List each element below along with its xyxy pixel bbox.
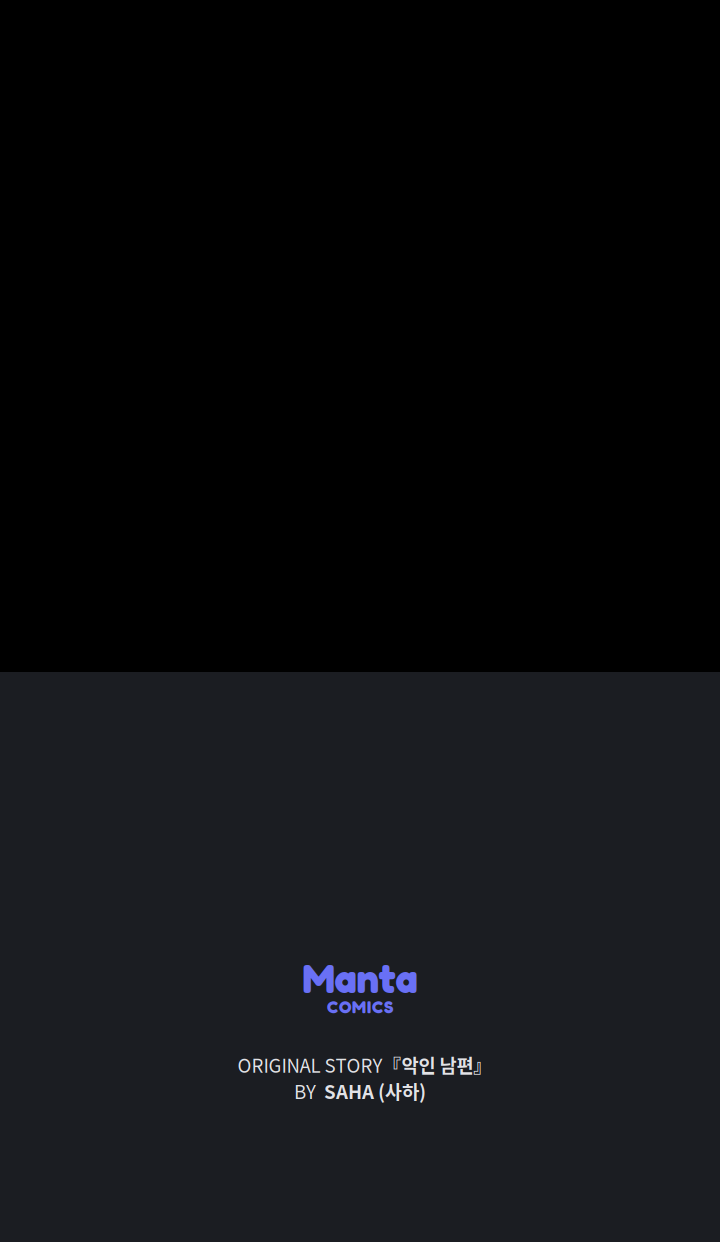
staticText: BY SAHA (사하) bbox=[294, 1078, 426, 1104]
button[interactable]: Manta Comics — Original story 악인 남편 by S… bbox=[0, 672, 720, 1242]
staticText: COMICS bbox=[327, 996, 393, 1017]
staticText: ORIGINAL STORY『악인 남편』 bbox=[237, 1051, 492, 1078]
staticText: Manta bbox=[302, 954, 417, 1002]
